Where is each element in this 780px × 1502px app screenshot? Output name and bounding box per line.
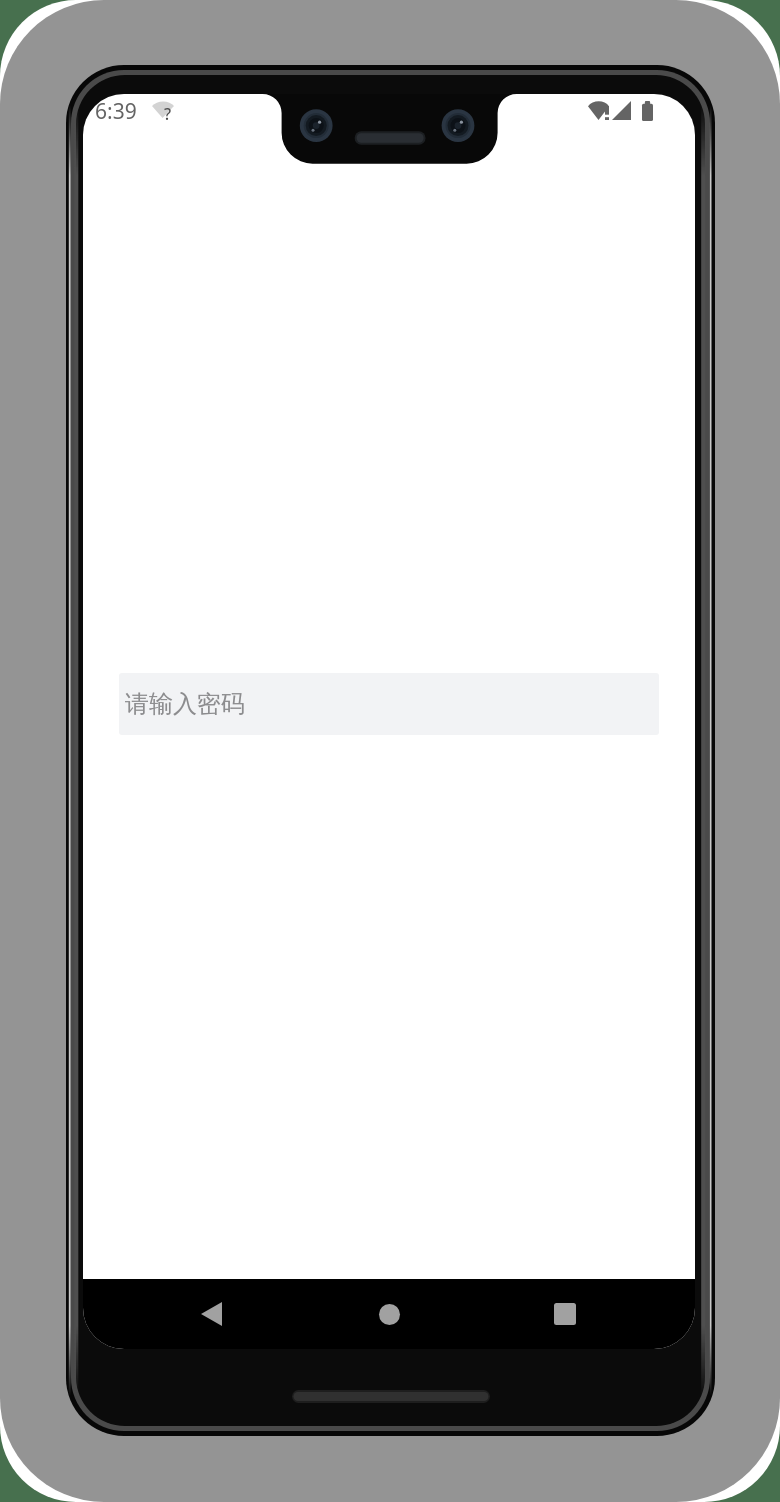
button[interactable]: Recent apps bbox=[528, 1279, 602, 1349]
button[interactable]: Back bbox=[174, 1279, 248, 1349]
button[interactable]: 请输入密码 bbox=[119, 673, 659, 735]
staticText: ? bbox=[164, 103, 172, 125]
button[interactable]: Home bbox=[352, 1279, 426, 1349]
staticText: 请输入密码 bbox=[125, 689, 245, 719]
staticText: 6:39 bbox=[95, 97, 137, 126]
